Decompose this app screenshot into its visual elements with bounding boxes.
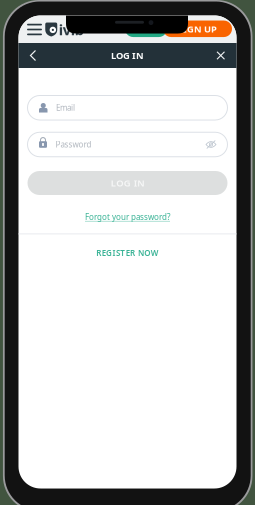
staticText: REGISTER NOW [96,248,159,258]
staticText: LOG IN [111,177,144,189]
button[interactable]: Back [23,43,42,67]
staticText: Email [56,102,75,113]
staticText: LOG IN [111,49,144,62]
button[interactable]: SIGN UP [163,21,232,37]
button[interactable]: LOG IN [125,21,167,37]
button[interactable]: Forgot your password? [79,209,176,225]
button[interactable]: Menu [22,17,46,41]
button[interactable]: Close [210,44,231,67]
button[interactable]: REGISTER NOW [88,243,167,263]
button[interactable]: LOG IN [27,171,227,195]
staticText: SIGN UP [178,23,217,35]
staticText: LOG IN [129,23,162,35]
staticText: Forgot your password? [85,212,170,222]
staticText: ivib [59,20,84,39]
staticText: Password [55,139,91,150]
